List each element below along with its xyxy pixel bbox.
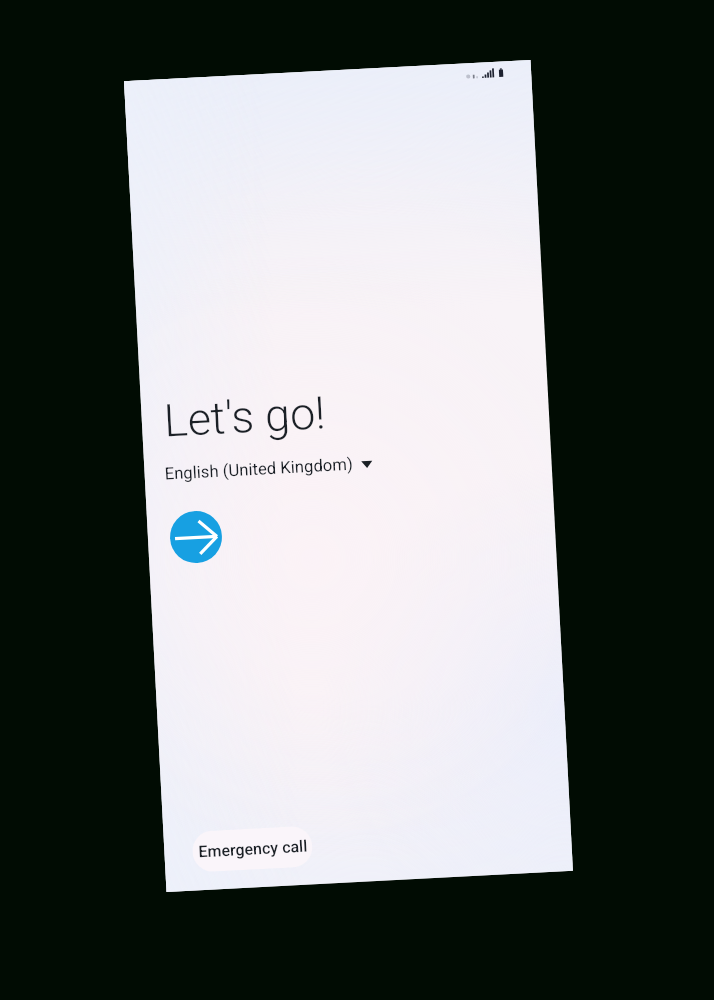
staticText: Emergency call [198, 837, 308, 861]
button[interactable]: English (United Kingdom) [162, 450, 377, 488]
other: Signal and battery status [464, 63, 509, 83]
button[interactable]: Next [169, 510, 223, 564]
staticText: Let's go! [162, 386, 327, 447]
button[interactable]: Emergency call [191, 825, 313, 873]
staticText: English (United Kingdom) [164, 455, 354, 485]
